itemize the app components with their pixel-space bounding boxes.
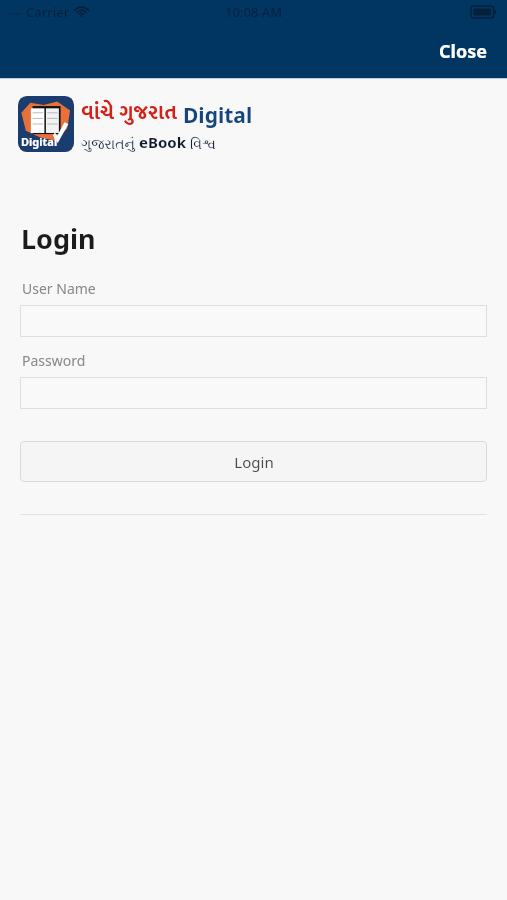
- staticText: 10:08 AM: [225, 3, 283, 21]
- button[interactable]: Login: [20, 441, 487, 482]
- button[interactable]: [20, 377, 487, 409]
- staticText: Carrier: [26, 3, 70, 21]
- staticText: Login: [21, 220, 96, 257]
- staticText: ગુજરાતનું: [81, 138, 135, 152]
- staticText: eBook: [139, 132, 186, 152]
- staticText: Login: [234, 452, 274, 472]
- staticText: Password: [22, 351, 86, 370]
- staticText: Digital: [21, 134, 58, 149]
- staticText: Digital: [183, 101, 253, 130]
- button[interactable]: Close: [419, 29, 507, 74]
- staticText: User Name: [22, 279, 96, 298]
- staticText: વિશ્વ: [190, 138, 216, 152]
- staticText: વાંચે ગુજરાત: [81, 95, 177, 130]
- staticText: Close: [439, 39, 487, 64]
- button[interactable]: [20, 305, 487, 337]
